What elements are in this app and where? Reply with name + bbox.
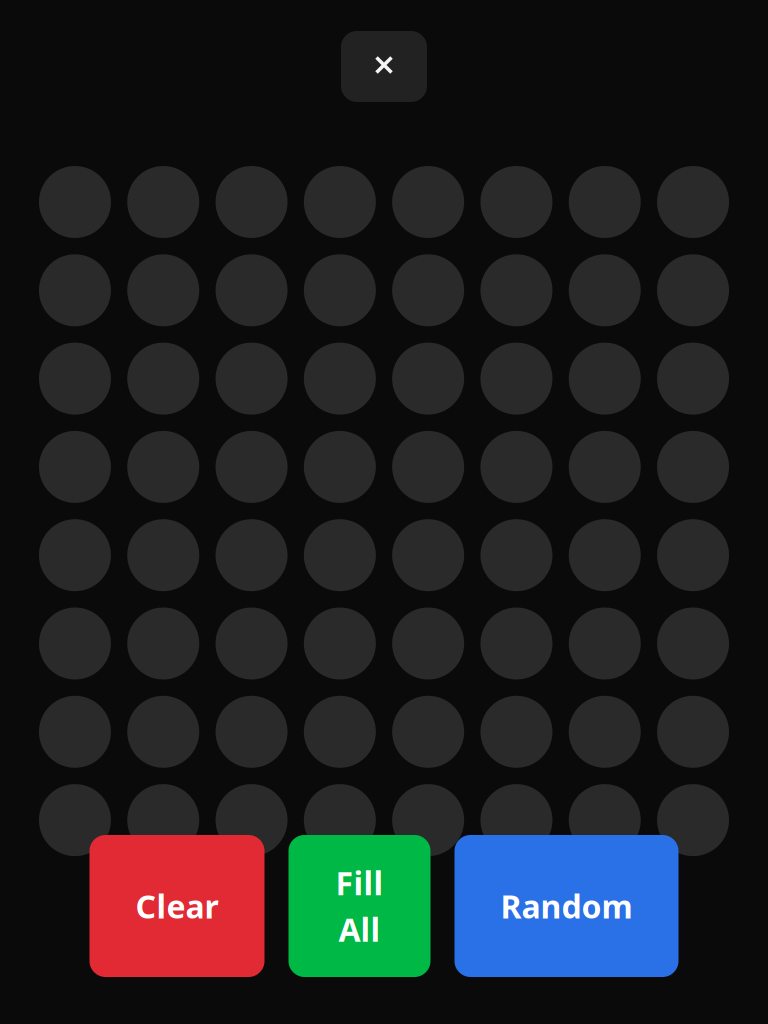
button[interactable]: Toggle pixel — [657, 166, 729, 238]
button[interactable]: Toggle pixel — [480, 519, 552, 591]
button[interactable]: Toggle pixel — [480, 254, 552, 326]
button[interactable]: Toggle pixel — [657, 343, 729, 415]
button[interactable]: Toggle pixel — [304, 519, 376, 591]
button[interactable]: Toggle pixel — [304, 784, 376, 856]
button[interactable]: Fill — [288, 835, 430, 977]
button[interactable]: Toggle pixel — [304, 607, 376, 679]
button[interactable]: Toggle pixel — [569, 784, 641, 856]
staticText: Random — [500, 885, 632, 927]
button[interactable]: Toggle pixel — [127, 343, 199, 415]
button[interactable]: Toggle pixel — [569, 696, 641, 768]
button[interactable]: Toggle pixel — [569, 519, 641, 591]
button[interactable]: Toggle pixel — [304, 166, 376, 238]
button[interactable]: Toggle pixel — [39, 519, 111, 591]
button[interactable]: Toggle pixel — [392, 431, 464, 503]
button[interactable]: Clear — [89, 835, 264, 977]
button[interactable]: Toggle pixel — [304, 431, 376, 503]
button[interactable]: Toggle pixel — [215, 254, 287, 326]
staticText: All — [338, 908, 380, 950]
button[interactable]: Toggle pixel — [215, 607, 287, 679]
button[interactable]: Toggle pixel — [127, 166, 199, 238]
button[interactable]: Toggle pixel — [480, 431, 552, 503]
button[interactable]: Toggle pixel — [392, 784, 464, 856]
button[interactable]: Toggle pixel — [127, 696, 199, 768]
button[interactable]: Toggle pixel — [569, 166, 641, 238]
button[interactable]: Toggle pixel — [39, 254, 111, 326]
button[interactable]: Toggle pixel — [39, 784, 111, 856]
button[interactable]: Toggle pixel — [39, 431, 111, 503]
button[interactable]: Toggle pixel — [39, 343, 111, 415]
button[interactable]: Toggle pixel — [392, 607, 464, 679]
button[interactable]: Toggle pixel — [392, 696, 464, 768]
button[interactable]: Toggle pixel — [39, 607, 111, 679]
button[interactable]: Toggle pixel — [215, 696, 287, 768]
button[interactable]: Close — [341, 31, 427, 102]
button[interactable]: Toggle pixel — [657, 431, 729, 503]
button[interactable]: Toggle pixel — [657, 254, 729, 326]
button[interactable]: Toggle pixel — [39, 696, 111, 768]
button[interactable]: Toggle pixel — [215, 519, 287, 591]
button[interactable]: Toggle pixel — [392, 254, 464, 326]
button[interactable]: Toggle pixel — [569, 431, 641, 503]
button[interactable]: Toggle pixel — [304, 696, 376, 768]
button[interactable]: Toggle pixel — [569, 343, 641, 415]
button[interactable]: Toggle pixel — [480, 343, 552, 415]
button[interactable]: Toggle pixel — [127, 607, 199, 679]
button[interactable]: Toggle pixel — [657, 607, 729, 679]
button[interactable]: Toggle pixel — [215, 784, 287, 856]
button[interactable]: Toggle pixel — [569, 607, 641, 679]
button[interactable]: Toggle pixel — [569, 254, 641, 326]
button[interactable]: Toggle pixel — [480, 696, 552, 768]
button[interactable]: Random — [454, 835, 678, 977]
button[interactable]: Toggle pixel — [127, 519, 199, 591]
button[interactable]: Toggle pixel — [657, 784, 729, 856]
button[interactable]: Toggle pixel — [39, 166, 111, 238]
staticText: Clear — [135, 885, 218, 927]
button[interactable]: Toggle pixel — [392, 166, 464, 238]
button[interactable]: Toggle pixel — [215, 166, 287, 238]
button[interactable]: Toggle pixel — [480, 784, 552, 856]
button[interactable]: Toggle pixel — [392, 519, 464, 591]
button[interactable]: Toggle pixel — [304, 343, 376, 415]
button[interactable]: Toggle pixel — [127, 431, 199, 503]
button[interactable]: Toggle pixel — [304, 254, 376, 326]
button[interactable]: Toggle pixel — [657, 519, 729, 591]
staticText: Fill — [335, 861, 383, 904]
button[interactable]: Toggle pixel — [657, 696, 729, 768]
button[interactable]: Toggle pixel — [392, 343, 464, 415]
button[interactable]: Toggle pixel — [480, 607, 552, 679]
button[interactable]: Toggle pixel — [215, 431, 287, 503]
button[interactable]: Toggle pixel — [127, 254, 199, 326]
button[interactable]: Toggle pixel — [480, 166, 552, 238]
button[interactable]: Toggle pixel — [127, 784, 199, 856]
button[interactable]: Toggle pixel — [215, 343, 287, 415]
